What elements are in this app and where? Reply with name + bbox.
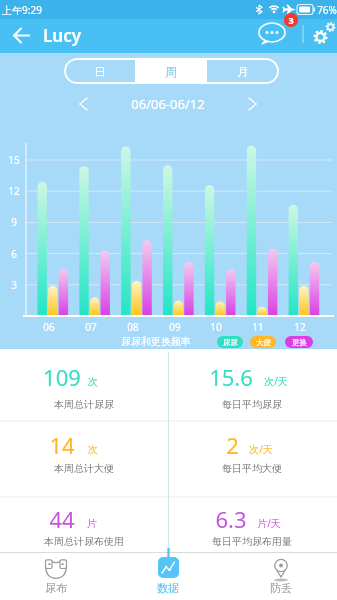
staticText: 12: [294, 320, 306, 334]
staticText: 上午9:29: [2, 3, 42, 17]
staticText: 数据: [157, 581, 179, 595]
button[interactable]: [0, 553, 112, 600]
staticText: 每日平均大便: [222, 462, 282, 475]
staticText: 109: [43, 362, 81, 392]
button[interactable]: [238, 92, 266, 116]
staticText: 08: [127, 320, 139, 334]
staticText: 6: [11, 247, 17, 261]
staticText: 次/天: [264, 374, 288, 388]
staticText: 76%: [317, 3, 337, 17]
staticText: 尿尿: [223, 338, 238, 347]
button[interactable]: 日: [64, 58, 135, 84]
staticText: 6.3: [215, 504, 247, 534]
staticText: 3: [288, 14, 294, 26]
staticText: 尿尿和更换频率: [121, 335, 191, 348]
staticText: 9: [11, 215, 17, 229]
staticText: 每日平均尿布用量: [212, 535, 292, 548]
button[interactable]: [70, 92, 98, 116]
button[interactable]: [256, 18, 300, 50]
staticText: 每日平均尿尿: [222, 398, 282, 411]
staticText: 大便: [256, 338, 271, 347]
staticText: 片/天: [257, 516, 281, 530]
staticText: 次: [88, 443, 98, 456]
button[interactable]: [308, 20, 336, 48]
staticText: 周: [165, 64, 177, 79]
staticText: 12: [8, 184, 20, 198]
staticText: 07: [85, 320, 97, 334]
staticText: 2: [226, 430, 239, 460]
staticText: 10: [210, 320, 222, 334]
staticText: 防丢: [270, 581, 292, 595]
staticText: 11: [252, 320, 264, 334]
staticText: 本周总计尿尿: [54, 398, 114, 411]
staticText: 更换: [292, 338, 307, 347]
staticText: Lucy: [43, 24, 81, 47]
staticText: 44: [49, 504, 75, 534]
staticText: 片: [87, 517, 97, 530]
staticText: 本周总计大便: [54, 462, 114, 475]
button[interactable]: [8, 23, 36, 49]
staticText: 06/06-06/12: [131, 95, 205, 113]
staticText: 15.6: [209, 362, 253, 392]
button[interactable]: [112, 553, 225, 600]
staticText: 日: [94, 64, 106, 79]
staticText: 14: [49, 430, 75, 460]
button[interactable]: [225, 553, 337, 600]
staticText: 次: [88, 375, 98, 388]
staticText: 本周总计尿布使用: [44, 535, 124, 548]
button[interactable]: 月: [207, 58, 279, 84]
staticText: 3: [11, 278, 17, 292]
staticText: 15: [8, 153, 20, 167]
staticText: 06: [43, 320, 55, 334]
staticText: 月: [237, 64, 249, 79]
staticText: 尿布: [45, 581, 67, 595]
button[interactable]: 周: [135, 58, 207, 84]
staticText: 09: [169, 320, 181, 334]
staticText: 次/天: [249, 442, 273, 456]
